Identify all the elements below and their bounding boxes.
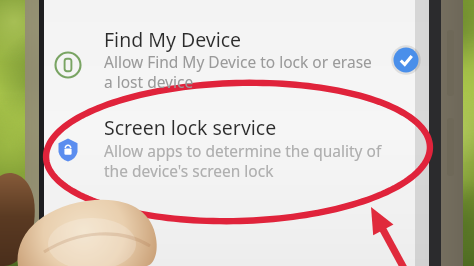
staticText: Find My Device <box>104 26 242 53</box>
button[interactable]: Find My Device enabled <box>393 47 419 73</box>
button[interactable]: Find My Device <box>104 26 404 90</box>
button[interactable]: Find My Device icon <box>55 48 81 74</box>
button[interactable]: Screen lock service <box>104 114 404 184</box>
button[interactable]: Screen lock service icon <box>55 137 81 163</box>
staticText: Allow Find My Device to lock or erase a … <box>104 51 372 92</box>
staticText: Allow apps to determine the quality of t… <box>104 140 382 181</box>
staticText: Screen lock service <box>104 114 277 141</box>
